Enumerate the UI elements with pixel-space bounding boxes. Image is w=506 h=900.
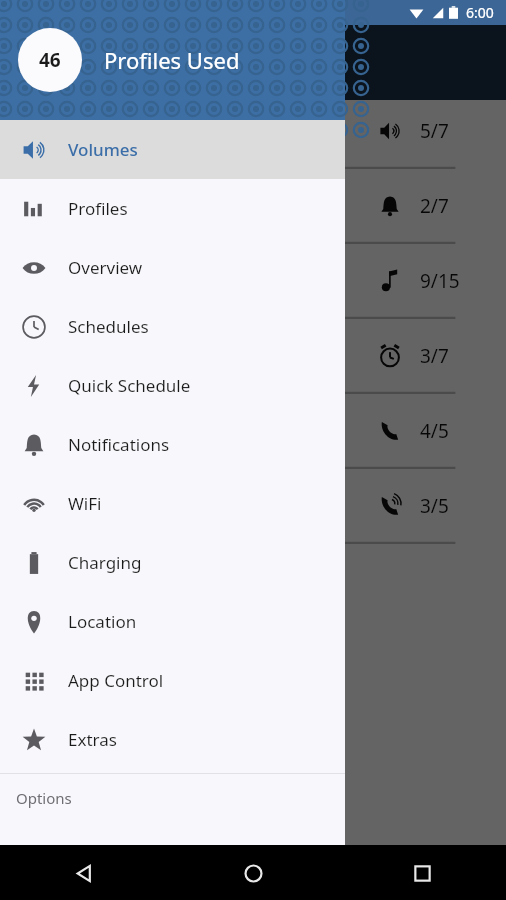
- button[interactable]: Charging: [0, 533, 345, 592]
- button[interactable]: App Control: [0, 651, 345, 710]
- staticText: Charging: [68, 551, 142, 574]
- staticText: 4/5: [420, 418, 449, 444]
- button[interactable]: Volumes: [0, 120, 345, 179]
- staticText: 9/15: [420, 268, 460, 294]
- button[interactable]: Extras: [0, 710, 345, 769]
- staticText: Profiles: [68, 197, 128, 220]
- staticText: Location: [68, 610, 137, 633]
- staticText: Notifications: [68, 433, 170, 456]
- staticText: Schedules: [68, 315, 149, 338]
- staticText: Profiles Used: [104, 45, 240, 75]
- staticText: Options: [16, 788, 72, 808]
- button[interactable]: Notifications: [0, 415, 345, 474]
- staticText: 3/7: [420, 343, 449, 369]
- staticText: App Control: [68, 669, 164, 692]
- button[interactable]: Recent apps: [398, 849, 446, 897]
- button[interactable]: WiFi: [0, 474, 345, 533]
- staticText: WiFi: [68, 492, 102, 515]
- staticText: Extras: [68, 728, 117, 751]
- button[interactable]: Location: [0, 592, 345, 651]
- staticText: Volumes: [68, 138, 138, 161]
- staticText: 6:00: [466, 3, 494, 22]
- staticText: 5/7: [420, 118, 449, 144]
- button[interactable]: Profiles: [0, 179, 345, 238]
- staticText: Quick Schedule: [68, 374, 191, 397]
- button[interactable]: Schedules: [0, 297, 345, 356]
- button[interactable]: Back: [60, 849, 108, 897]
- staticText: 3/5: [420, 493, 449, 519]
- staticText: Overview: [68, 256, 143, 279]
- staticText: 2/7: [420, 193, 449, 219]
- button[interactable]: Overview: [0, 238, 345, 297]
- staticText: 46: [39, 47, 61, 73]
- button[interactable]: Quick Schedule: [0, 356, 345, 415]
- button[interactable]: Home: [229, 849, 277, 897]
